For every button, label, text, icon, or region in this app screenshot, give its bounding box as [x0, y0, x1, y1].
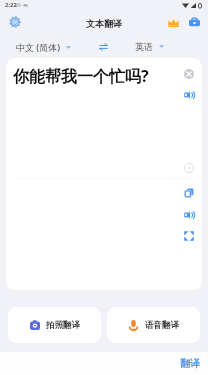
staticText: 2:22: [5, 1, 17, 9]
staticText: 英语: [135, 41, 153, 52]
button[interactable]: VIP membership: [165, 14, 181, 30]
button[interactable]: Listen to source: [181, 87, 197, 103]
staticText: 你能帮我一个忙吗?: [13, 65, 149, 87]
staticText: 文本翻译: [86, 18, 122, 29]
button[interactable]: Settings: [7, 14, 23, 30]
button[interactable]: Swap languages: [93, 37, 113, 57]
button[interactable]: 翻译: [176, 354, 204, 373]
button[interactable]: Copy translation: [181, 185, 197, 201]
button[interactable]: Translation history: [186, 14, 202, 30]
button[interactable]: Fullscreen: [181, 228, 197, 244]
button[interactable]: 中文 (简体): [12, 38, 75, 56]
button[interactable]: 英语: [131, 38, 168, 55]
staticText: 语音翻译: [145, 320, 179, 331]
button[interactable]: 语音翻译: [107, 307, 200, 343]
staticText: 翻译: [180, 357, 200, 370]
staticText: 中文 (简体): [16, 41, 60, 53]
button[interactable]: Clear text: [181, 66, 197, 82]
button[interactable]: 拍照翻译: [8, 307, 101, 343]
button[interactable]: Listen to translation: [181, 207, 197, 223]
button[interactable]: Information: [181, 160, 197, 176]
staticText: 拍照翻译: [46, 320, 80, 331]
